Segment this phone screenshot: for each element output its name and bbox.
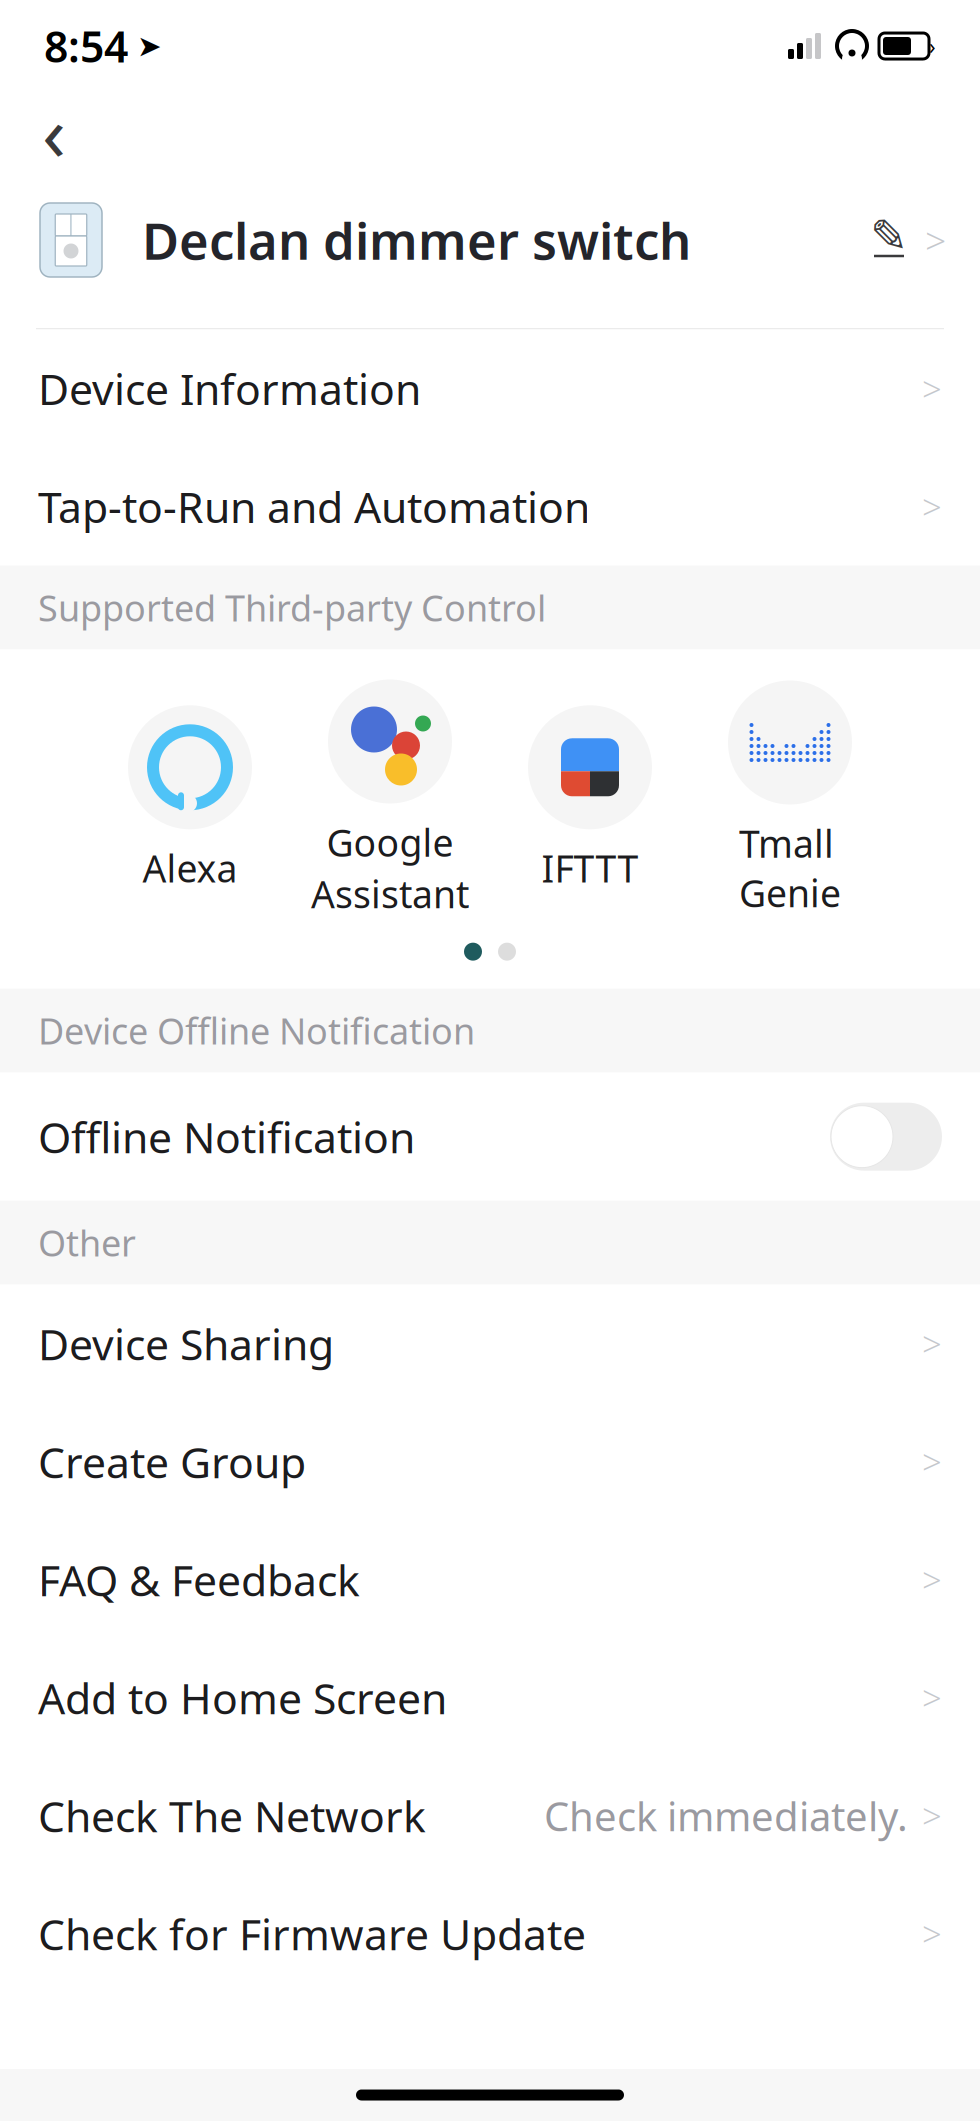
staticText: Check immediately.	[544, 1789, 908, 1842]
button[interactable]: Alexa	[90, 705, 290, 893]
button[interactable]: Create Group	[0, 1403, 980, 1521]
staticText: Declan dimmer switch	[142, 206, 691, 274]
staticText: Add to Home Screen	[38, 1669, 447, 1726]
button[interactable]: Check for Firmware Update	[0, 1875, 980, 1993]
staticText: >	[922, 1557, 942, 1603]
button[interactable]: Offline Notification	[0, 1073, 980, 1201]
staticText: Device Sharing	[38, 1315, 334, 1372]
button[interactable]: Device Information	[0, 329, 980, 447]
button[interactable]: Back	[18, 95, 90, 167]
staticText: >	[922, 1793, 942, 1839]
staticText: Assistant	[311, 869, 469, 919]
staticText: >	[922, 1911, 942, 1957]
staticText: Tap-to-Run and Automation	[38, 478, 590, 535]
staticText: IFTTT	[541, 843, 638, 893]
staticText: >	[922, 483, 942, 529]
staticText: ✎	[870, 210, 908, 262]
staticText: >	[925, 215, 946, 265]
staticText: Device Offline Notification	[38, 1007, 475, 1055]
staticText: >	[922, 365, 942, 411]
staticText: >	[922, 1321, 942, 1367]
button[interactable]: IFTTT	[490, 705, 690, 893]
staticText: Tmall Genie	[739, 818, 841, 918]
button[interactable]: Check The Network	[0, 1757, 980, 1875]
button[interactable]: Add to Home Screen	[0, 1639, 980, 1757]
button[interactable]: Declan dimmer switch	[0, 170, 980, 310]
staticText: 8:54	[44, 18, 128, 74]
button[interactable]: Device Sharing	[0, 1285, 980, 1403]
staticText: ‹	[42, 80, 66, 182]
button[interactable]: Tmall Genie	[690, 680, 890, 918]
staticText: Other	[38, 1219, 136, 1267]
button[interactable]: Google	[290, 679, 490, 919]
staticText: Device Information	[38, 360, 421, 417]
staticText: Check The Network	[38, 1787, 426, 1844]
staticText: >	[922, 1439, 942, 1485]
staticText: ›	[929, 32, 936, 60]
staticText: Supported Third-party Control	[38, 584, 546, 631]
staticText: ➤	[128, 29, 162, 63]
staticText: Google	[326, 817, 453, 867]
staticText: >	[922, 1675, 942, 1721]
staticText: Alexa	[142, 843, 237, 893]
button[interactable]: FAQ & Feedback	[0, 1521, 980, 1639]
staticText: FAQ & Feedback	[38, 1551, 360, 1608]
button[interactable]: Tap-to-Run and Automation	[0, 447, 980, 565]
staticText: Check for Firmware Update	[38, 1905, 586, 1962]
staticText: Create Group	[38, 1433, 306, 1490]
staticText: Offline Notification	[38, 1108, 415, 1165]
